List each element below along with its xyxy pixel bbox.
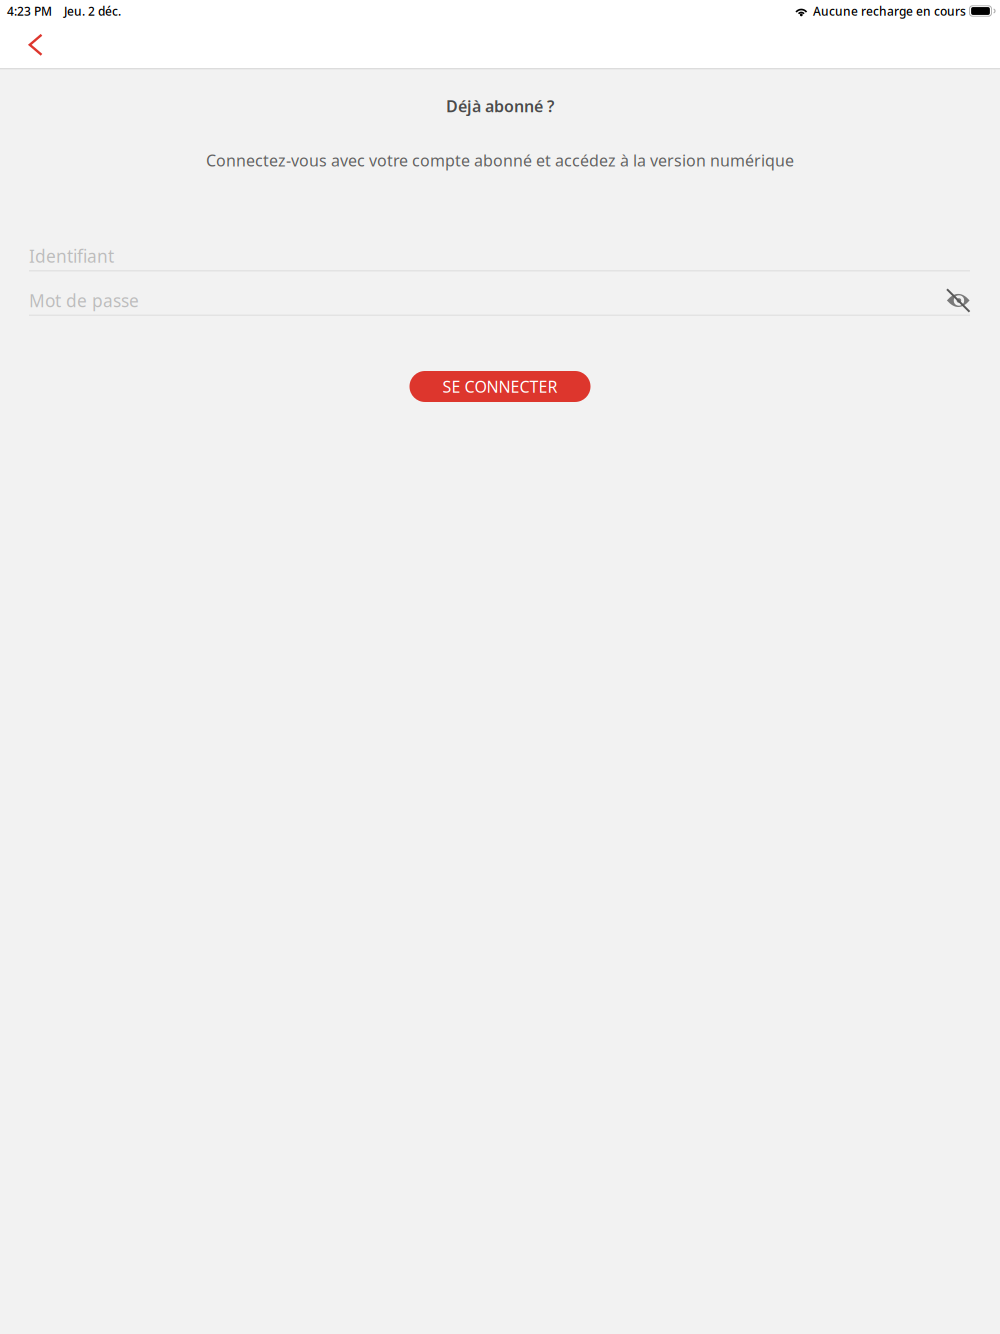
button[interactable]: Show password [946,286,970,314]
button[interactable]: Mot de passe [29,286,946,314]
staticText: Aucune recharge en cours [813,3,966,19]
staticText: SE CONNECTER [442,376,557,397]
button[interactable]: SE CONNECTER [409,371,590,402]
staticText: 4:23 PM [7,3,52,19]
staticText: Connectez-vous avec votre compte abonné … [206,150,794,171]
button[interactable]: Back [14,23,58,67]
staticText: Jeu. 2 déc. [64,3,121,19]
staticText: Identifiant [29,244,114,267]
button[interactable]: Identifiant [29,242,970,270]
staticText: Mot de passe [29,289,139,312]
staticText: Déjà abonné ? [446,95,554,117]
